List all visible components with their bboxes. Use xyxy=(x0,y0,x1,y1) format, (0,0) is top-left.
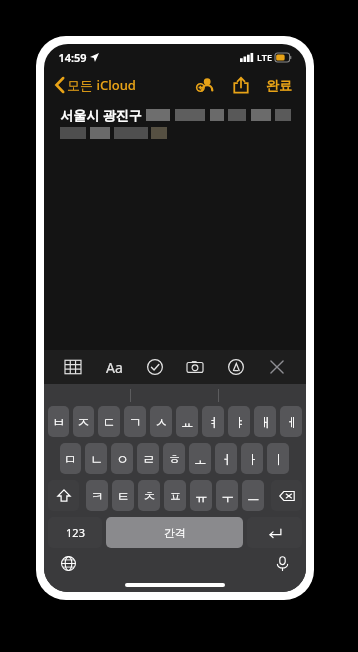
button[interactable]: 123 xyxy=(48,517,102,548)
staticText: LTE xyxy=(257,51,272,63)
staticText: 14:59 xyxy=(58,50,87,65)
staticText: 서울시 광진구 xyxy=(60,106,142,124)
staticText: ㅛ xyxy=(181,414,194,430)
button[interactable]: ㅓ xyxy=(215,443,237,474)
staticText: ㅣ xyxy=(272,451,285,467)
button[interactable]: ㅅ xyxy=(150,406,172,437)
staticText: ㄱ xyxy=(129,414,142,430)
staticText: ㅔ xyxy=(285,414,298,430)
button[interactable]: ㅜ xyxy=(216,480,238,511)
staticText: ㅕ xyxy=(207,414,220,430)
button[interactable]: ㄴ xyxy=(85,443,107,474)
button[interactable]: ㅏ xyxy=(241,443,263,474)
staticText: ㅎ xyxy=(168,451,181,467)
staticText: ㅐ xyxy=(259,414,272,430)
button[interactable]: ㅈ xyxy=(73,406,94,437)
button[interactable]: ㅋ xyxy=(86,480,108,511)
staticText: ㅌ xyxy=(117,488,130,504)
staticText: Aa xyxy=(106,358,123,377)
button[interactable]: Change keyboard xyxy=(54,549,82,577)
button[interactable]: Return xyxy=(247,517,302,548)
button[interactable]: ㅂ xyxy=(48,406,69,437)
button[interactable]: ㅗ xyxy=(189,443,211,474)
staticText: ㅡ xyxy=(247,488,260,504)
button[interactable]: Format xyxy=(99,352,129,382)
staticText: ㅜ xyxy=(221,488,234,504)
staticText: ㅂ xyxy=(52,414,65,430)
button[interactable]: Close keyboard xyxy=(262,352,292,382)
staticText: ㅍ xyxy=(169,488,182,504)
staticText: ㅑ xyxy=(233,414,246,430)
staticText: ㄹ xyxy=(142,451,155,467)
button[interactable]: ㅊ xyxy=(138,480,160,511)
button[interactable]: ㅣ xyxy=(267,443,289,474)
button[interactable]: Table xyxy=(58,352,88,382)
staticText: 완료 xyxy=(266,77,292,93)
staticText: ㅋ xyxy=(91,488,104,504)
button[interactable]: Share xyxy=(228,72,254,98)
button[interactable]: 완료 xyxy=(262,74,296,96)
button[interactable]: ㅎ xyxy=(163,443,185,474)
staticText: ㅅ xyxy=(155,414,168,430)
staticText: ㅗ xyxy=(194,451,207,467)
button[interactable]: Add people xyxy=(192,72,218,98)
staticText: ㅇ xyxy=(116,451,129,467)
button[interactable]: ㄱ xyxy=(124,406,146,437)
button[interactable]: ㅕ xyxy=(202,406,224,437)
button[interactable]: Shift xyxy=(48,480,79,511)
button[interactable]: ㅑ xyxy=(228,406,250,437)
staticText: 간격 xyxy=(164,526,186,540)
button[interactable]: ㅔ xyxy=(280,406,302,437)
staticText: 모든 iCloud xyxy=(67,76,136,94)
button[interactable]: Markup xyxy=(221,352,251,382)
button[interactable]: Backspace xyxy=(271,480,302,511)
button[interactable]: Checklist xyxy=(140,352,170,382)
staticText: ㄴ xyxy=(90,451,103,467)
staticText: ㅠ xyxy=(195,488,208,504)
staticText: 123 xyxy=(66,525,85,540)
button[interactable]: 모든 iCloud xyxy=(54,73,138,97)
staticText: ㅈ xyxy=(77,414,90,430)
button[interactable]: ㅠ xyxy=(190,480,212,511)
button[interactable]: ㅐ xyxy=(254,406,276,437)
staticText: ㅁ xyxy=(64,451,77,467)
button[interactable]: ㄹ xyxy=(137,443,159,474)
button[interactable]: ㅇ xyxy=(111,443,133,474)
button[interactable]: Dictation xyxy=(268,549,296,577)
staticText: ㅓ xyxy=(220,451,233,467)
button[interactable]: ㅍ xyxy=(164,480,186,511)
button[interactable]: ㄷ xyxy=(98,406,120,437)
button[interactable]: ㅡ xyxy=(242,480,264,511)
button[interactable]: 간격 xyxy=(106,517,243,548)
button[interactable]: ㅁ xyxy=(60,443,81,474)
staticText: ㅊ xyxy=(143,488,156,504)
button[interactable]: ㅌ xyxy=(112,480,134,511)
button[interactable]: Camera xyxy=(180,352,210,382)
staticText: ㄷ xyxy=(103,414,116,430)
button[interactable]: ㅛ xyxy=(176,406,198,437)
staticText: ㅏ xyxy=(246,451,259,467)
